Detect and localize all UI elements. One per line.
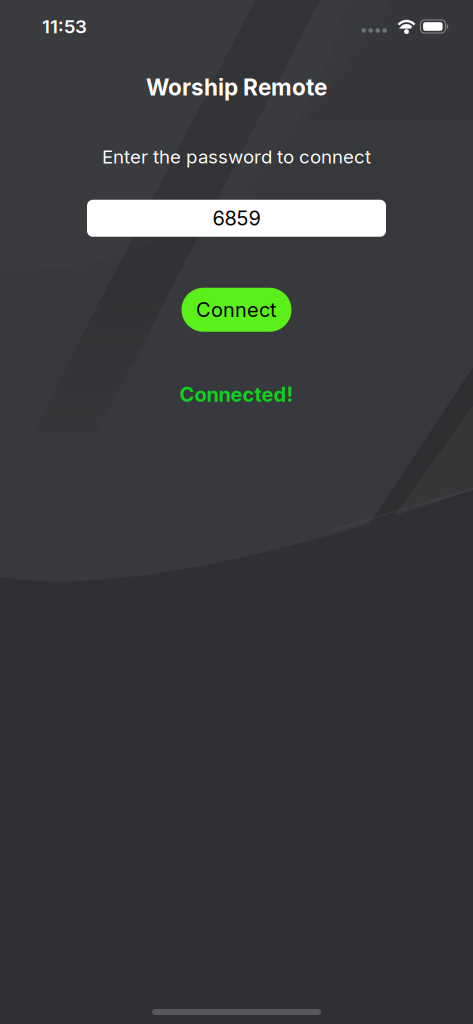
staticText: Enter the password to connect (102, 146, 371, 168)
staticText: Connect (196, 298, 277, 322)
staticText: Worship Remote (146, 74, 327, 101)
staticText: Connected! (179, 383, 293, 406)
staticText: 11:53 (42, 15, 87, 37)
button[interactable]: Connect (181, 288, 291, 332)
button[interactable]: 6859 (87, 200, 386, 237)
staticText: 6859 (212, 206, 260, 230)
